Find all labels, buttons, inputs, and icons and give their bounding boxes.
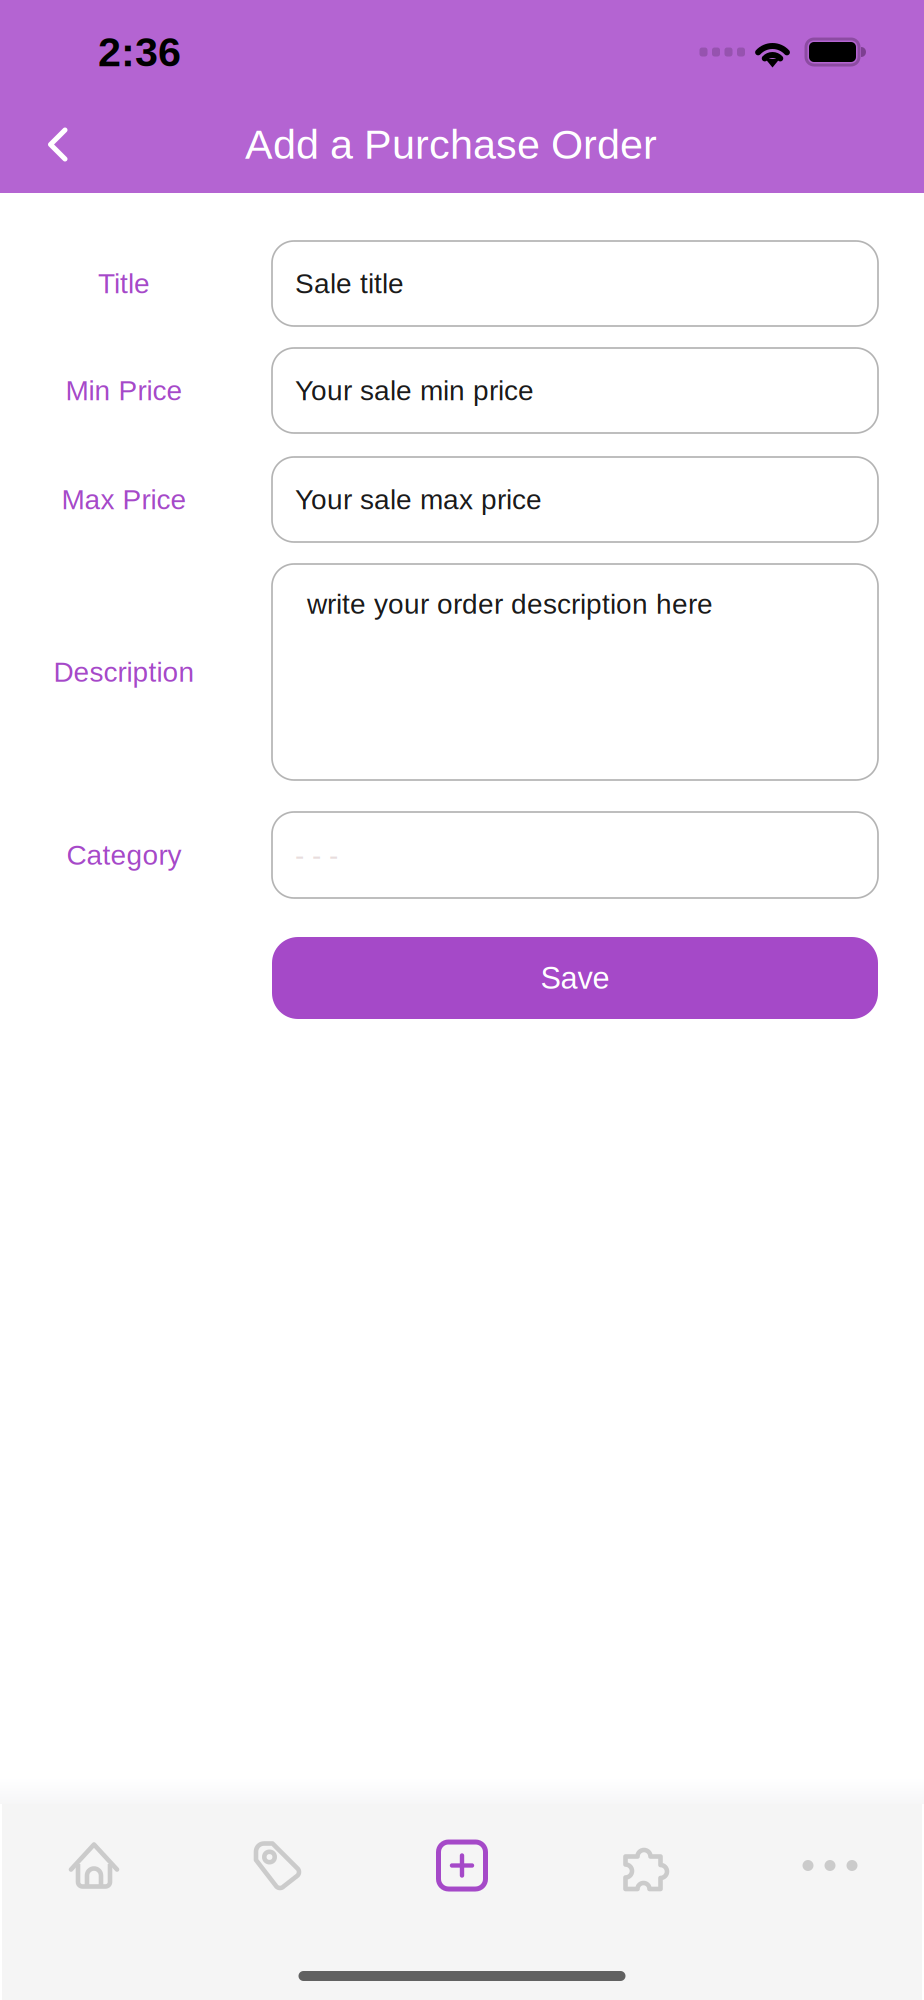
staticText: write your order description here (307, 588, 713, 620)
button[interactable]: Deals (186, 1804, 370, 1927)
staticText: Description (53, 656, 194, 688)
staticText: Category (66, 839, 181, 871)
button[interactable]: write your order description here (272, 564, 878, 780)
staticText: Sale title (295, 268, 404, 299)
staticText: Your sale min price (295, 375, 534, 406)
button[interactable]: Your sale max price (272, 457, 878, 542)
staticText: Your sale max price (295, 484, 542, 515)
button[interactable]: Extensions (554, 1804, 738, 1927)
button[interactable]: Save (272, 937, 878, 1019)
button[interactable]: Sale title (272, 241, 878, 326)
button[interactable]: More (738, 1804, 922, 1927)
button[interactable]: Back (0, 99, 116, 189)
button[interactable]: Add (370, 1804, 554, 1927)
staticText: Min Price (65, 375, 182, 406)
staticText: Save (540, 961, 609, 995)
staticText: 2:36 (98, 29, 181, 75)
staticText: Add a Purchase Order (245, 121, 657, 168)
staticText: Max Price (61, 484, 186, 515)
button[interactable]: Your sale min price (272, 348, 878, 433)
staticText: - - - (295, 839, 338, 871)
button[interactable]: - - - (272, 812, 878, 898)
staticText: Title (98, 268, 150, 299)
button[interactable]: Home (2, 1804, 186, 1927)
